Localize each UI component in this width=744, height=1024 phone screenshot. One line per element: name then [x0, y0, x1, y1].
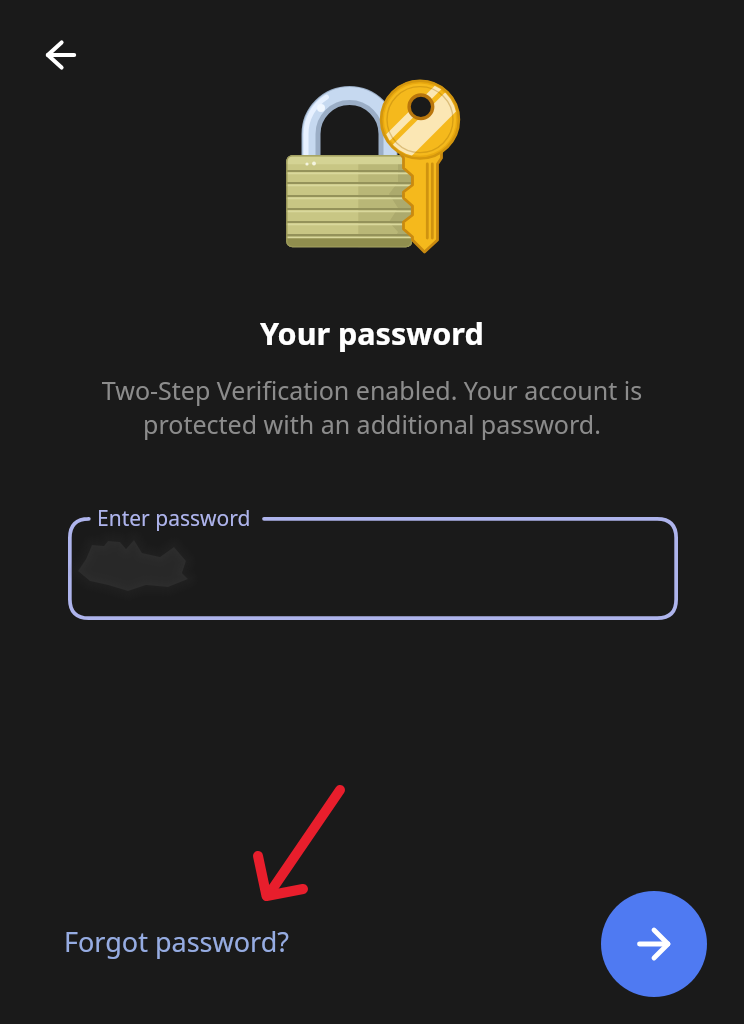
button[interactable]: Continue: [601, 891, 707, 997]
staticText: Forgot password?: [64, 923, 290, 960]
button[interactable]: Enter password: [68, 517, 678, 620]
button[interactable]: Forgot password?: [64, 923, 290, 960]
button[interactable]: Back: [28, 22, 93, 87]
staticText: Two-Step Verification enabled. Your acco…: [82, 373, 662, 441]
staticText: Your password: [260, 312, 484, 354]
staticText: Enter password: [97, 504, 251, 533]
